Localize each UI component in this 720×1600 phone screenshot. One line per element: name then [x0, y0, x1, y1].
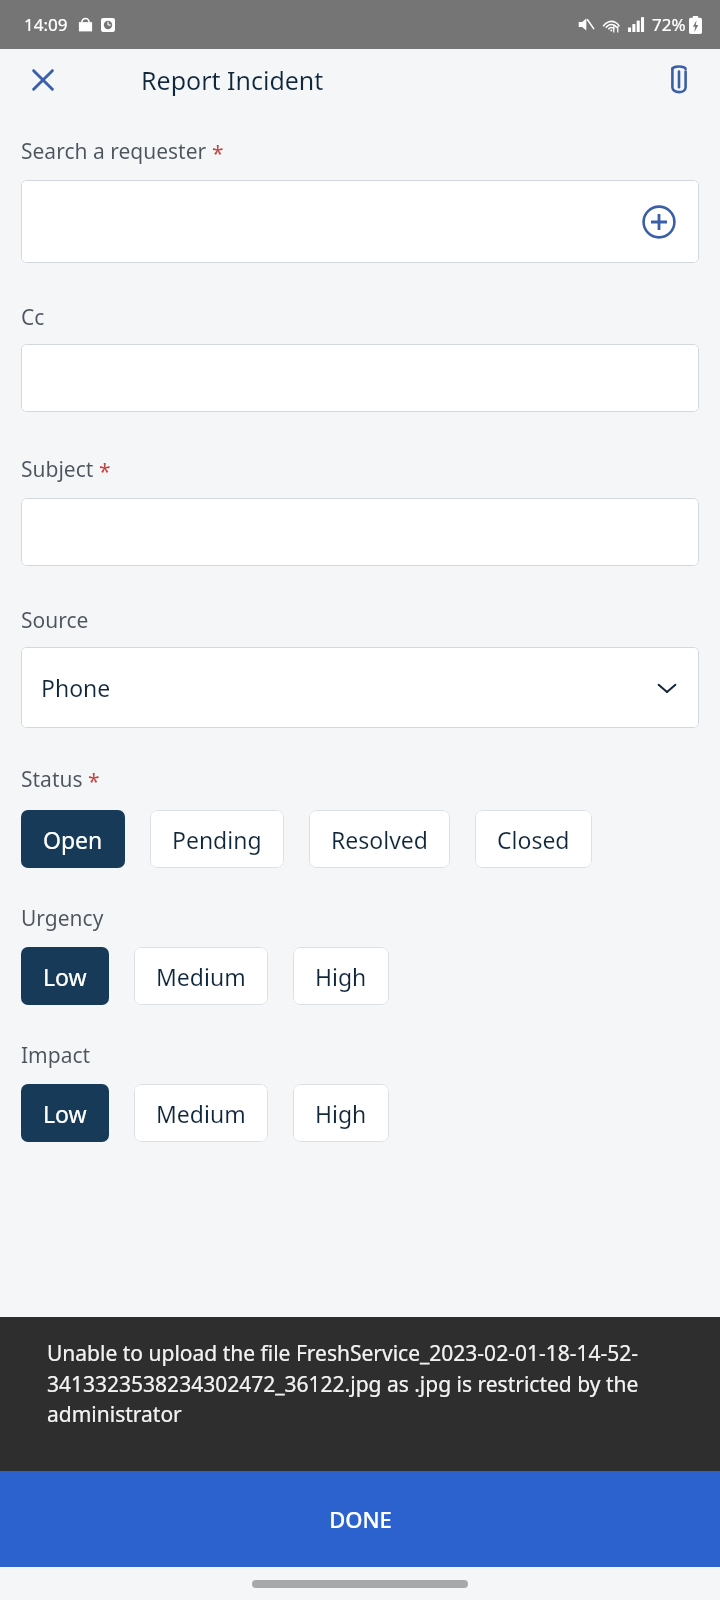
staticText: Resolved [331, 824, 428, 855]
staticText: Unable to upload the file FreshService_2… [47, 1339, 648, 1428]
staticText: DONE [329, 1504, 392, 1534]
staticText: Source [21, 606, 89, 635]
button[interactable]: DONE [0, 1471, 720, 1567]
staticText: Open [43, 824, 103, 855]
button[interactable]: High [293, 947, 389, 1005]
staticText: 14:09 [24, 13, 68, 36]
button[interactable]: Phone [21, 647, 699, 728]
button[interactable]: Medium [134, 947, 268, 1005]
staticText: * [212, 139, 224, 168]
button[interactable]: Low [21, 947, 109, 1005]
button[interactable] [21, 498, 699, 566]
staticText: Cc [21, 303, 45, 332]
staticText: Report Incident [141, 63, 324, 97]
button[interactable]: Resolved [309, 810, 450, 868]
button[interactable]: Attach file [656, 57, 702, 103]
button[interactable] [21, 344, 699, 412]
button[interactable]: Pending [150, 810, 284, 868]
button[interactable]: Closed [475, 810, 592, 868]
staticText: Closed [497, 824, 570, 855]
staticText: Medium [156, 1098, 246, 1129]
staticText: Urgency [21, 904, 104, 933]
button[interactable]: Add requester [640, 203, 678, 241]
staticText: Search a requester [21, 137, 207, 166]
staticText: Pending [172, 824, 262, 855]
staticText: Medium [156, 961, 246, 992]
button[interactable]: Medium [134, 1084, 268, 1142]
button[interactable]: Open [21, 810, 125, 868]
staticText: High [315, 961, 367, 992]
staticText: Subject [21, 455, 94, 484]
staticText: * [88, 767, 100, 796]
staticText: 72% [652, 13, 686, 36]
staticText: High [315, 1098, 367, 1129]
staticText: Low [43, 961, 87, 992]
button[interactable]: Add requester [21, 180, 699, 263]
button[interactable]: Low [21, 1084, 109, 1142]
staticText: * [99, 457, 111, 486]
button[interactable]: Close [22, 59, 64, 101]
staticText: Phone [41, 672, 111, 703]
button[interactable]: High [293, 1084, 389, 1142]
staticText: Impact [21, 1041, 91, 1070]
staticText: Low [43, 1098, 87, 1129]
staticText: Status [21, 765, 83, 794]
